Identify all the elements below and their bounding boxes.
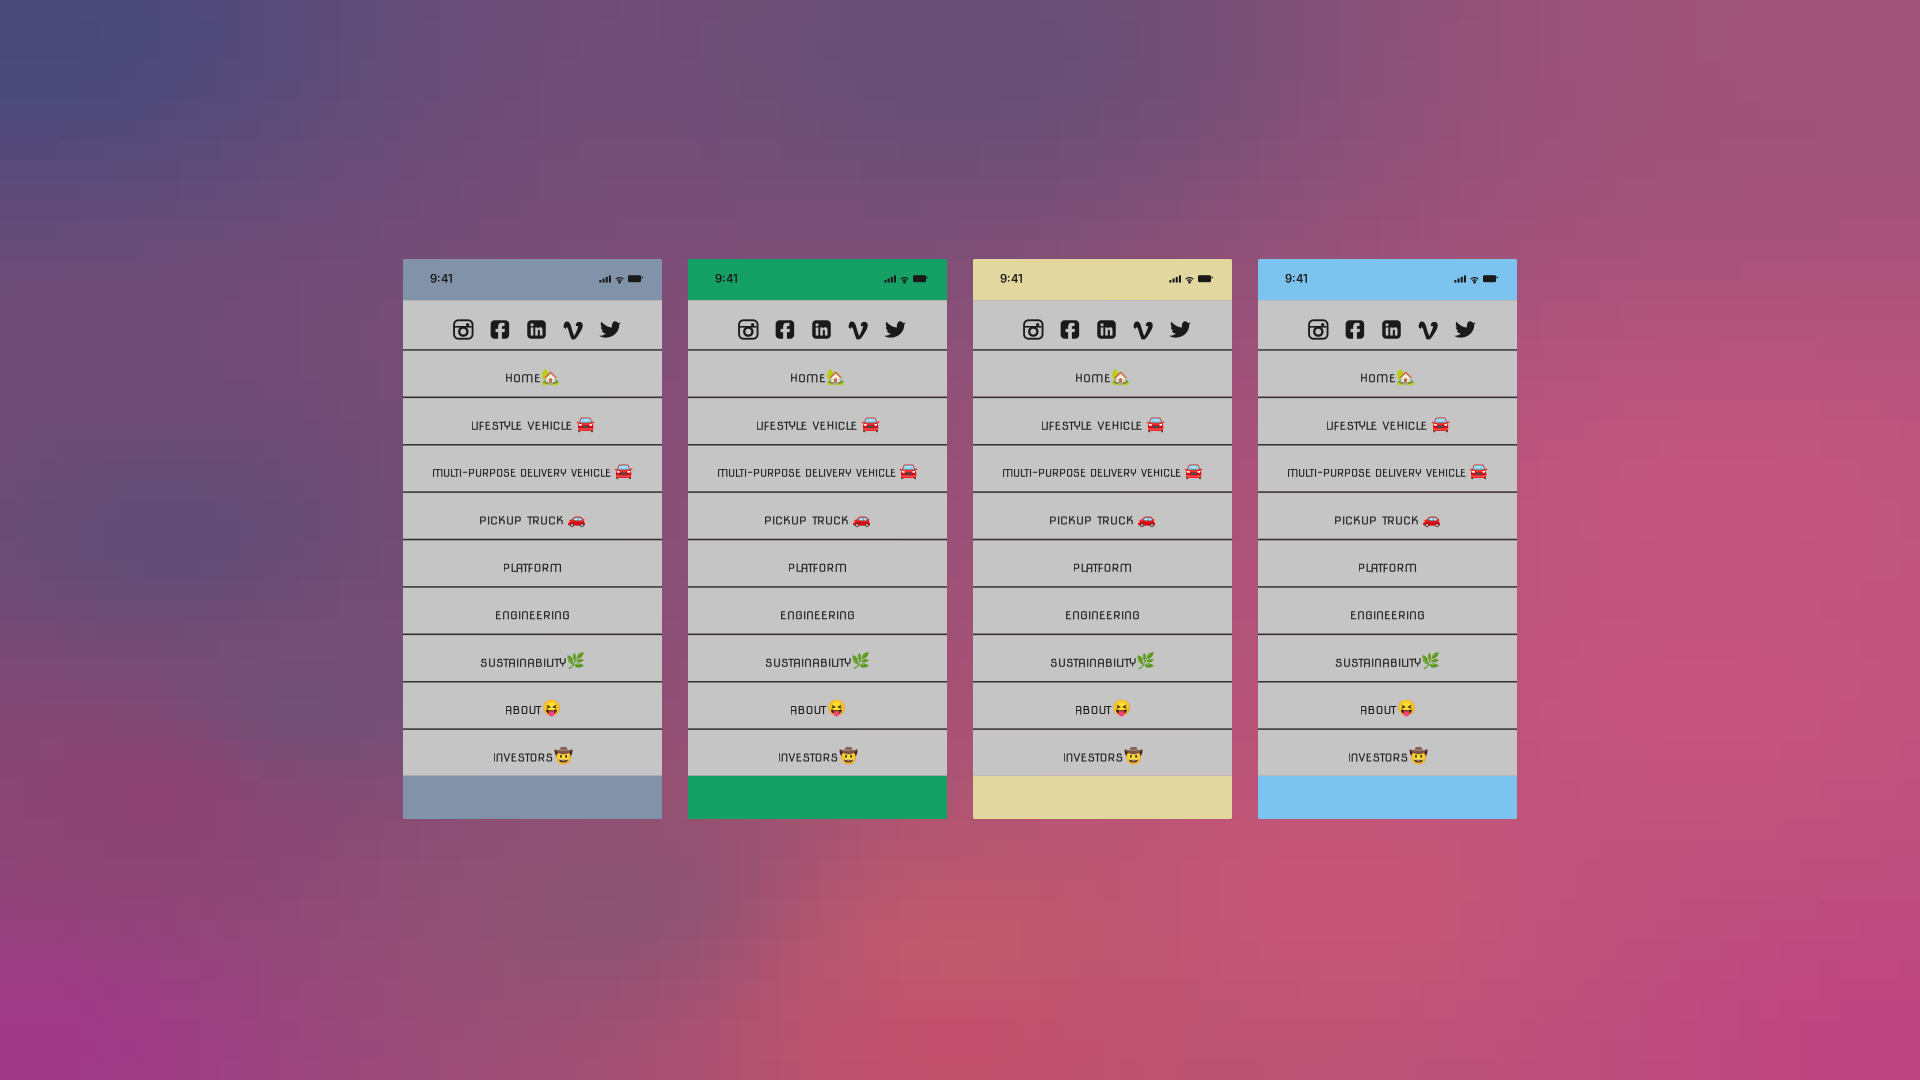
staticText: INVESTORS [1062, 750, 1123, 764]
staticText: 😝 [1396, 699, 1415, 717]
staticText: PICKUP TRUCK [1049, 513, 1134, 527]
button[interactable]: ABOUT [403, 681, 662, 728]
button[interactable]: LIFESTYLE VEHICLE [688, 397, 947, 444]
button[interactable]: Vimeo [555, 300, 591, 349]
staticText: 🌿 [1421, 652, 1440, 670]
staticText: PICKUP TRUCK [1334, 513, 1419, 527]
staticText: 🚗 [1422, 509, 1441, 527]
staticText: MULTI-PURPOSE DELIVERY VEHICLE [717, 466, 896, 479]
button[interactable]: ENGINEERING [688, 586, 947, 634]
button[interactable]: INVESTORS [973, 728, 1232, 776]
button[interactable]: Instagram [445, 300, 482, 349]
button[interactable]: ENGINEERING [973, 586, 1232, 634]
button[interactable]: LIFESTYLE VEHICLE [403, 397, 662, 444]
staticText: 🚘 [899, 462, 918, 480]
button[interactable]: PLATFORM [688, 539, 947, 586]
staticText: 🚘 [614, 462, 633, 480]
staticText: 🌿 [1136, 652, 1155, 670]
button[interactable]: LIFESTYLE VEHICLE [1258, 397, 1517, 444]
button[interactable]: MULTI-PURPOSE DELIVERY VEHICLE [1258, 444, 1517, 491]
button[interactable]: Twitter [591, 300, 628, 349]
button[interactable]: ENGINEERING [403, 586, 662, 634]
button[interactable]: Vimeo [1410, 300, 1446, 349]
staticText: HOME [790, 371, 826, 385]
button[interactable]: INVESTORS [1258, 728, 1517, 776]
button[interactable]: SUSTAINABILITY [403, 634, 662, 681]
button[interactable]: Instagram [730, 300, 767, 349]
staticText: LIFESTYLE VEHICLE [1040, 418, 1142, 432]
button[interactable]: LinkedIn [518, 300, 555, 349]
button[interactable]: LinkedIn [1373, 300, 1410, 349]
button[interactable]: PICKUP TRUCK [403, 491, 662, 539]
button[interactable]: ENGINEERING [1258, 586, 1517, 634]
button[interactable]: SUSTAINABILITY [973, 634, 1232, 681]
staticText: HOME [1360, 371, 1396, 385]
button[interactable]: LinkedIn [1088, 300, 1125, 349]
button[interactable]: HOME [688, 349, 947, 397]
staticText: 🚘 [1469, 462, 1488, 480]
button[interactable]: SUSTAINABILITY [1258, 634, 1517, 681]
staticText: 🏡 [1396, 367, 1415, 385]
button[interactable]: PLATFORM [403, 539, 662, 586]
button[interactable]: PICKUP TRUCK [1258, 491, 1517, 539]
button[interactable]: Vimeo [1125, 300, 1161, 349]
staticText: MULTI-PURPOSE DELIVERY VEHICLE [1002, 466, 1181, 479]
staticText: MULTI-PURPOSE DELIVERY VEHICLE [1287, 466, 1466, 479]
staticText: 🤠 [1123, 746, 1142, 764]
staticText: 🏡 [541, 367, 560, 385]
staticText: PICKUP TRUCK [479, 513, 564, 527]
button[interactable]: Instagram [1015, 300, 1052, 349]
button[interactable]: PLATFORM [973, 539, 1232, 586]
staticText: 🤠 [553, 746, 572, 764]
button[interactable]: ABOUT [688, 681, 947, 728]
staticText: INVESTORS [1347, 750, 1408, 764]
button[interactable]: Instagram [1300, 300, 1337, 349]
button[interactable]: HOME [973, 349, 1232, 397]
button[interactable]: INVESTORS [403, 728, 662, 776]
staticText: 🚗 [852, 509, 871, 527]
staticText: ABOUT [789, 703, 826, 717]
button[interactable]: Twitter [876, 300, 913, 349]
button[interactable]: Facebook [767, 300, 803, 349]
staticText: 🤠 [1408, 746, 1427, 764]
staticText: 9:41 [430, 272, 453, 285]
staticText: ABOUT [1074, 703, 1111, 717]
button[interactable]: HOME [403, 349, 662, 397]
staticText: SUSTAINABILITY [480, 655, 566, 669]
staticText: 9:41 [1285, 272, 1308, 285]
staticText: 🌿 [851, 652, 870, 670]
staticText: SUSTAINABILITY [1050, 655, 1136, 669]
button[interactable]: LinkedIn [803, 300, 840, 349]
staticText: 🌿 [566, 652, 585, 670]
staticText: ABOUT [1359, 703, 1396, 717]
staticText: 😝 [541, 699, 560, 717]
button[interactable]: MULTI-PURPOSE DELIVERY VEHICLE [973, 444, 1232, 491]
button[interactable]: PICKUP TRUCK [973, 491, 1232, 539]
button[interactable]: HOME [1258, 349, 1517, 397]
staticText: ENGINEERING [1065, 608, 1140, 622]
button[interactable]: Vimeo [840, 300, 876, 349]
staticText: 😝 [826, 699, 845, 717]
button[interactable]: Twitter [1446, 300, 1483, 349]
button[interactable]: ABOUT [1258, 681, 1517, 728]
staticText: SUSTAINABILITY [1335, 655, 1421, 669]
button[interactable]: PICKUP TRUCK [688, 491, 947, 539]
button[interactable]: Facebook [482, 300, 518, 349]
staticText: HOME [1075, 371, 1111, 385]
button[interactable]: LIFESTYLE VEHICLE [973, 397, 1232, 444]
button[interactable]: Facebook [1052, 300, 1088, 349]
button[interactable]: ABOUT [973, 681, 1232, 728]
staticText: ABOUT [504, 703, 541, 717]
staticText: 🚘 [1145, 415, 1164, 433]
staticText: 🏡 [1111, 367, 1130, 385]
button[interactable]: INVESTORS [688, 728, 947, 776]
button[interactable]: SUSTAINABILITY [688, 634, 947, 681]
button[interactable]: PLATFORM [1258, 539, 1517, 586]
button[interactable]: Twitter [1161, 300, 1198, 349]
button[interactable]: MULTI-PURPOSE DELIVERY VEHICLE [688, 444, 947, 491]
staticText: MULTI-PURPOSE DELIVERY VEHICLE [432, 466, 611, 479]
button[interactable]: Facebook [1337, 300, 1373, 349]
button[interactable]: MULTI-PURPOSE DELIVERY VEHICLE [403, 444, 662, 491]
staticText: INVESTORS [492, 750, 553, 764]
staticText: INVESTORS [777, 750, 838, 764]
